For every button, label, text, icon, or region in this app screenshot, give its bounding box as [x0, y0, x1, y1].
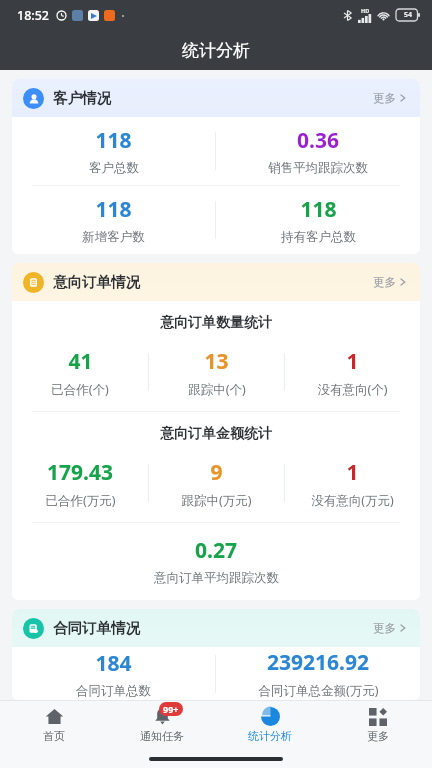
staticText: HD [361, 7, 370, 14]
staticText: 更多 [367, 729, 389, 743]
button[interactable]: 179.43 [12, 458, 148, 509]
button[interactable]: 1 [285, 458, 420, 509]
staticText: 意向订单平均跟踪次数 [154, 570, 279, 586]
staticText: 新增客户数 [82, 229, 145, 245]
staticText: 0.36 [297, 126, 339, 155]
staticText: 已合作(个) [51, 381, 109, 398]
button[interactable]: 更多 [371, 85, 409, 111]
staticText: 184 [95, 649, 132, 678]
button[interactable]: 意向订单情况 [12, 263, 420, 600]
staticText: 118 [300, 195, 337, 224]
button[interactable]: 9 [149, 458, 284, 509]
staticText: 118 [95, 195, 132, 224]
staticText: 41 [68, 347, 93, 376]
staticText: 统计分析 [182, 40, 250, 61]
button[interactable]: 首页 [0, 701, 108, 749]
staticText: 更多 [373, 275, 396, 289]
staticText: 客户情况 [53, 89, 111, 107]
staticText: 9 [210, 458, 223, 487]
staticText: 18:52 [17, 7, 50, 24]
staticText: 持有客户总数 [281, 229, 356, 245]
staticText: 没有意向(个) [317, 381, 388, 398]
staticText: 通知任务 [140, 729, 184, 743]
staticText: 合同订单总金额(万元) [258, 682, 379, 699]
staticText: 统计分析 [248, 729, 292, 743]
button[interactable]: 0.27 [12, 536, 420, 586]
button[interactable]: 0.36 [216, 126, 420, 176]
staticText: 13 [204, 347, 229, 376]
staticText: 意向订单金额统计 [160, 425, 272, 443]
staticText: 1 [346, 458, 359, 487]
button[interactable]: 通知任务 [108, 701, 216, 749]
button[interactable]: 合同订单情况 [12, 609, 420, 700]
staticText: 跟踪中(万元) [181, 492, 252, 509]
button[interactable]: 更多 [371, 269, 409, 295]
staticText: 合同订单情况 [53, 619, 140, 637]
button[interactable]: 13 [149, 347, 284, 398]
button[interactable]: 118 [12, 126, 215, 176]
staticText: 销售平均跟踪次数 [268, 160, 368, 176]
button[interactable]: 更多 [324, 701, 432, 749]
staticText: 179.43 [47, 458, 113, 487]
staticText: 意向订单情况 [53, 273, 140, 291]
button[interactable]: 118 [216, 195, 420, 245]
button[interactable]: 184 [12, 649, 215, 699]
button[interactable]: 客户情况 [12, 79, 420, 254]
staticText: 客户总数 [89, 160, 139, 176]
button[interactable]: 更多 [371, 615, 409, 641]
staticText: 合同订单总数 [76, 683, 151, 699]
staticText: 54 [404, 10, 413, 20]
staticText: 更多 [373, 621, 396, 635]
staticText: 1 [346, 347, 359, 376]
staticText: 意向订单数量统计 [160, 314, 272, 332]
staticText: 没有意向(万元) [311, 492, 394, 509]
staticText: 已合作(万元) [45, 492, 116, 509]
staticText: 239216.92 [267, 648, 369, 677]
staticText: 118 [95, 126, 132, 155]
button[interactable]: 239216.92 [216, 648, 420, 699]
staticText: 99+ [163, 703, 179, 715]
staticText: 首页 [43, 729, 65, 743]
staticText: 跟踪中(个) [188, 381, 246, 398]
button[interactable]: 41 [12, 347, 148, 398]
button[interactable]: 统计分析 [216, 701, 324, 749]
staticText: 0.27 [195, 536, 237, 565]
button[interactable]: 1 [285, 347, 420, 398]
staticText: 更多 [373, 91, 396, 105]
button[interactable]: 118 [12, 195, 215, 245]
